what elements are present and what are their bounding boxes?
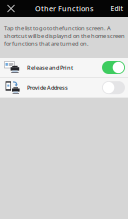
staticText: Tap the list to go to thefunction screen…	[4, 24, 125, 47]
staticText: Release and Print	[27, 64, 73, 71]
button[interactable]: Release and Print	[0, 58, 128, 77]
staticText: Provide Address	[27, 84, 68, 91]
staticText: Edit	[110, 4, 123, 13]
button[interactable]: Edit	[106, 0, 128, 17]
button[interactable]: Close	[0, 0, 22, 17]
staticText: Other Functions	[35, 4, 93, 13]
button[interactable]: Provide Address	[0, 78, 128, 98]
